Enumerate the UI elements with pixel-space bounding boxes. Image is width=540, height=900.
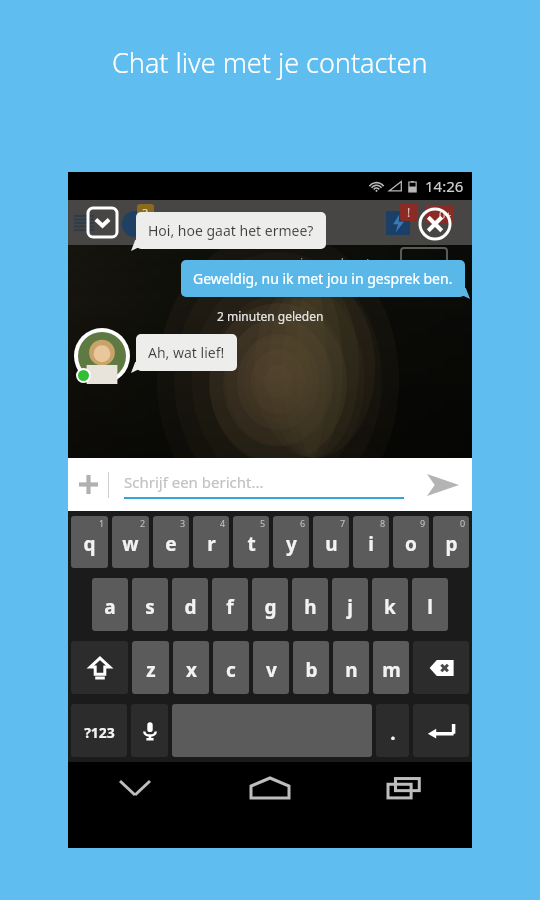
staticText: u xyxy=(325,531,338,557)
staticText: 2 minuten geleden xyxy=(217,308,324,324)
button[interactable]: Add attachment xyxy=(68,458,108,511)
staticText: l xyxy=(427,594,433,620)
button[interactable]: Shift xyxy=(71,641,128,694)
staticText: f xyxy=(226,594,234,620)
staticText: j xyxy=(347,594,353,620)
button[interactable]: k xyxy=(372,578,408,631)
staticText: i xyxy=(368,531,374,557)
button[interactable]: p xyxy=(433,516,469,568)
button[interactable]: ?123 xyxy=(71,704,127,757)
button[interactable]: m xyxy=(373,641,409,694)
button[interactable]: Send xyxy=(414,458,472,511)
button[interactable]: Recents xyxy=(337,762,472,814)
staticText: n xyxy=(345,657,358,683)
staticText: 3 xyxy=(142,205,149,220)
staticText: Hoi, hoe gaat het ermee? xyxy=(148,221,314,240)
staticText: 1 xyxy=(99,517,105,529)
button[interactable]: v xyxy=(253,641,289,694)
staticText: ?123 xyxy=(84,723,115,742)
button[interactable]: e xyxy=(153,516,189,568)
staticText: Schrijf een bericht... xyxy=(124,472,264,492)
staticText: 7 xyxy=(340,517,346,529)
staticText: y xyxy=(286,531,297,557)
staticText: 4 xyxy=(220,517,226,529)
staticText: Geweldig, nu ik met jou in gesprek ben. xyxy=(193,269,453,288)
staticText: z xyxy=(146,657,156,683)
staticText: 0 xyxy=(460,517,466,529)
staticText: m xyxy=(382,657,401,683)
button[interactable]: i xyxy=(353,516,389,568)
staticText: e xyxy=(165,531,177,557)
staticText: d xyxy=(184,594,197,620)
button[interactable]: Voice input xyxy=(131,704,168,757)
staticText: r xyxy=(207,531,216,557)
button[interactable]: Enter xyxy=(413,704,469,757)
staticText: . xyxy=(390,720,396,746)
staticText: p xyxy=(445,531,458,557)
staticText: 2 xyxy=(140,517,146,529)
staticText: 3 xyxy=(180,517,186,529)
button[interactable]: Backspace xyxy=(413,641,469,694)
staticText: 5 xyxy=(260,517,266,529)
button[interactable]: Home xyxy=(202,762,337,814)
staticText: x xyxy=(186,657,197,683)
staticText: o xyxy=(405,531,417,557)
button[interactable]: z xyxy=(132,641,169,694)
staticText: k xyxy=(384,594,396,620)
button[interactable]: l xyxy=(412,578,448,631)
button[interactable]: s xyxy=(132,578,168,631)
button[interactable]: q xyxy=(71,516,108,568)
staticText: v xyxy=(266,657,277,683)
staticText: 5 minuten geleden xyxy=(217,221,324,237)
staticText: a xyxy=(104,594,116,620)
button[interactable]: o xyxy=(393,516,429,568)
button[interactable]: Ah, wat lief! xyxy=(136,334,237,371)
staticText: s xyxy=(145,594,155,620)
button[interactable]: Collapse xyxy=(86,206,119,239)
staticText: 6 xyxy=(300,517,306,529)
button[interactable]: Close xyxy=(418,207,452,241)
staticText: 8 xyxy=(380,517,386,529)
button[interactable]: u xyxy=(313,516,349,568)
staticText: h xyxy=(304,594,317,620)
button[interactable]: r xyxy=(193,516,229,568)
button[interactable]: Back xyxy=(68,762,202,814)
staticText: w xyxy=(122,531,139,557)
button[interactable]: y xyxy=(273,516,309,568)
button[interactable]: x xyxy=(173,641,209,694)
button[interactable]: Menu xyxy=(74,212,94,234)
button[interactable]: c xyxy=(213,641,249,694)
staticText: 14:26 xyxy=(425,176,464,196)
staticText: c xyxy=(226,657,236,683)
button[interactable]: d xyxy=(172,578,208,631)
button[interactable]: a xyxy=(92,578,128,631)
staticText: t xyxy=(247,531,256,557)
staticText: q xyxy=(83,531,96,557)
button[interactable]: . xyxy=(376,704,409,757)
button[interactable]: w xyxy=(112,516,149,568)
button[interactable]: Hoi, hoe gaat het ermee? xyxy=(136,212,326,249)
staticText: Chat live met je contacten xyxy=(112,44,428,81)
staticText: 9 xyxy=(420,517,426,529)
button[interactable]: n xyxy=(333,641,369,694)
staticText: b xyxy=(305,657,318,683)
button[interactable]: t xyxy=(233,516,269,568)
staticText: ! xyxy=(407,204,411,220)
button[interactable]: f xyxy=(212,578,248,631)
button[interactable]: h xyxy=(292,578,328,631)
button[interactable]: g xyxy=(252,578,288,631)
staticText: je vandaan) xyxy=(300,254,371,272)
button[interactable]: b xyxy=(293,641,329,694)
button[interactable]: Geweldig, nu ik met jou in gesprek ben. xyxy=(181,260,465,297)
staticText: 0+ xyxy=(439,207,452,222)
button[interactable]: Schrijf een bericht... xyxy=(124,458,404,511)
staticText: g xyxy=(264,594,277,620)
staticText: Ah, wat lief! xyxy=(148,343,225,362)
button[interactable]: j xyxy=(332,578,368,631)
